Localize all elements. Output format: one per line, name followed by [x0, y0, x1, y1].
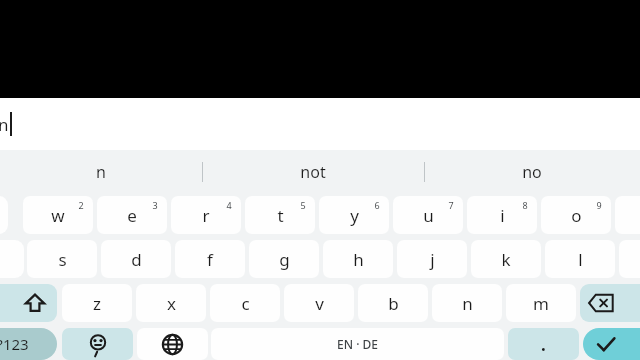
button[interactable]: u [393, 196, 463, 234]
staticText: 4 [226, 199, 232, 211]
staticText: i [500, 204, 505, 227]
button[interactable]: n [0, 98, 640, 150]
button[interactable]: Backspace [580, 284, 640, 322]
staticText: n [96, 161, 106, 183]
button[interactable]: i [467, 196, 537, 234]
button[interactable]: Enter [583, 328, 640, 360]
staticText: not [300, 161, 326, 183]
button[interactable]: c [210, 284, 280, 322]
staticText: n [462, 292, 473, 315]
staticText: o [571, 204, 582, 227]
staticText: 7 [448, 199, 454, 211]
staticText: t [277, 204, 284, 227]
staticText: d [131, 248, 142, 271]
staticText: b [388, 292, 399, 315]
staticText: ?123 [0, 334, 29, 354]
staticText: r [202, 204, 210, 227]
button[interactable] [0, 196, 8, 234]
staticText: g [279, 248, 290, 271]
staticText: 8 [522, 199, 528, 211]
button[interactable]: no [424, 150, 640, 194]
staticText: u [423, 204, 434, 227]
staticText: v [315, 292, 324, 315]
button[interactable]: j [397, 240, 467, 278]
staticText: m [533, 292, 549, 315]
staticText: h [353, 248, 364, 271]
button[interactable]: d [101, 240, 171, 278]
button[interactable]: t [245, 196, 315, 234]
staticText: w [51, 204, 65, 227]
staticText: x [167, 292, 176, 315]
button[interactable]: Space [211, 328, 504, 360]
button[interactable]: v [284, 284, 354, 322]
button[interactable]: b [358, 284, 428, 322]
staticText: e [127, 204, 137, 227]
staticText: s [58, 248, 67, 271]
button[interactable]: n [432, 284, 502, 322]
button[interactable]: Change keyboard language [137, 328, 208, 360]
button[interactable]: not [202, 150, 424, 194]
button[interactable]: s [27, 240, 97, 278]
staticText: l [578, 248, 583, 271]
button[interactable]: m [506, 284, 576, 322]
staticText: 3 [152, 199, 158, 211]
button[interactable]: g [249, 240, 319, 278]
button[interactable]: k [471, 240, 541, 278]
staticText: EN · DE [337, 336, 378, 352]
button[interactable]: x [136, 284, 206, 322]
button[interactable]: y [319, 196, 389, 234]
staticText: 9 [596, 199, 602, 211]
button[interactable]: Emoji [62, 328, 133, 360]
button[interactable]: o [541, 196, 611, 234]
button[interactable]: e [97, 196, 167, 234]
button[interactable]: ?123 [0, 328, 57, 360]
button[interactable]: . [508, 328, 579, 360]
staticText: no [522, 161, 542, 183]
button[interactable]: w [23, 196, 93, 234]
staticText: k [501, 248, 511, 271]
staticText: . [541, 333, 546, 356]
staticText: 2 [78, 199, 84, 211]
staticText: z [93, 292, 101, 315]
staticText: 6 [374, 199, 380, 211]
button[interactable]: h [323, 240, 393, 278]
staticText: c [241, 292, 250, 315]
staticText: j [430, 248, 435, 271]
button[interactable]: f [175, 240, 245, 278]
button[interactable]: z [62, 284, 132, 322]
staticText: y [350, 204, 359, 227]
button[interactable]: r [171, 196, 241, 234]
button[interactable]: Shift [0, 284, 57, 322]
staticText: n [0, 113, 9, 136]
button[interactable]: l [545, 240, 615, 278]
staticText: 5 [300, 199, 306, 211]
button[interactable]: n [0, 150, 202, 194]
staticText: f [207, 248, 213, 271]
